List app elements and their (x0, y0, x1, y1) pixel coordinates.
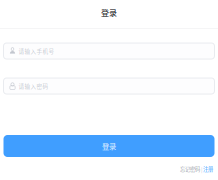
staticText: 登录 (101, 7, 117, 18)
button[interactable]: 请输入手机号 (3, 43, 214, 59)
staticText: 注册 (203, 165, 213, 173)
staticText: 登录 (102, 141, 116, 151)
staticText: 请输入密码 (18, 82, 48, 90)
button[interactable]: 请输入密码 (3, 78, 214, 94)
button[interactable]: 登录 (3, 135, 214, 157)
button[interactable]: 忘记密码 (180, 165, 200, 173)
staticText: | (200, 165, 203, 173)
staticText: 请输入手机号 (18, 47, 54, 55)
button[interactable]: 注册 (203, 165, 213, 173)
staticText: 忘记密码 (180, 165, 200, 173)
